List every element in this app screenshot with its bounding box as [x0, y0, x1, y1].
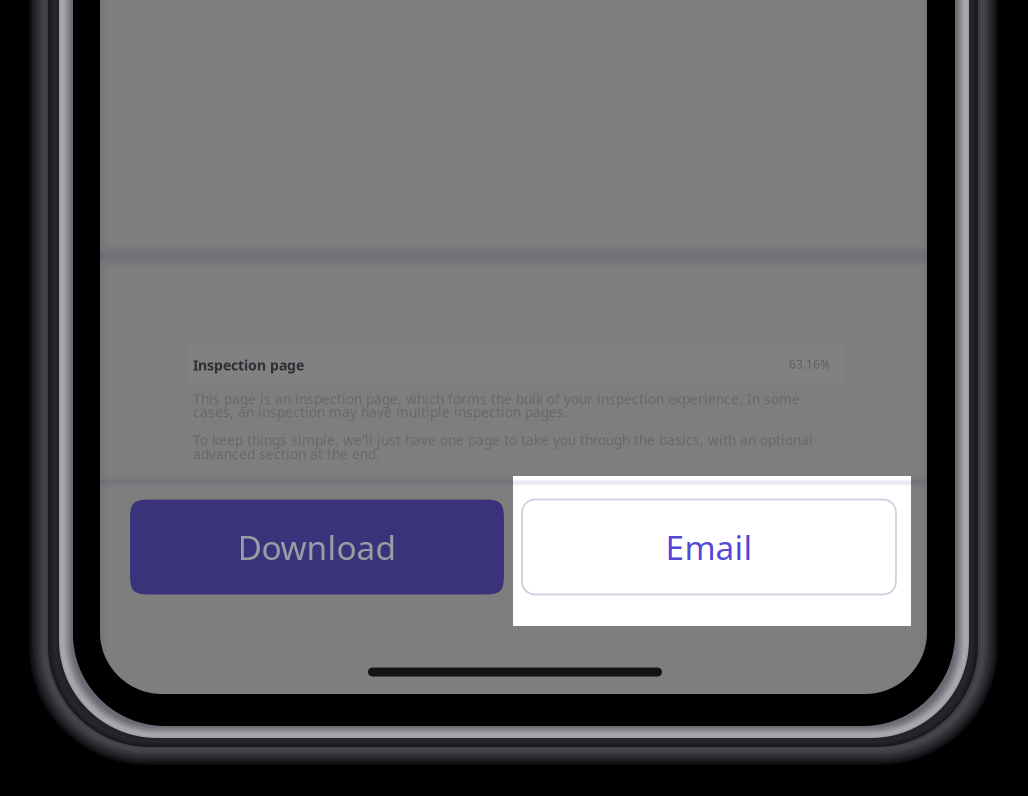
staticText: advanced section at the end. — [193, 445, 380, 463]
staticText: cases, an inspection may have multiple i… — [193, 403, 568, 421]
button[interactable]: Email — [522, 499, 896, 594]
button[interactable]: Email — [522, 499, 896, 594]
staticText: Email — [665, 525, 752, 569]
staticText: 63.16% — [789, 356, 830, 372]
staticText: Email — [665, 525, 752, 569]
staticText: To keep things simple, we'll just have o… — [193, 431, 813, 449]
staticText: Inspection page — [193, 356, 304, 374]
staticText: This page is an inspection page, which f… — [193, 390, 800, 408]
staticText: Download — [237, 525, 396, 569]
button[interactable]: Download — [130, 499, 504, 594]
